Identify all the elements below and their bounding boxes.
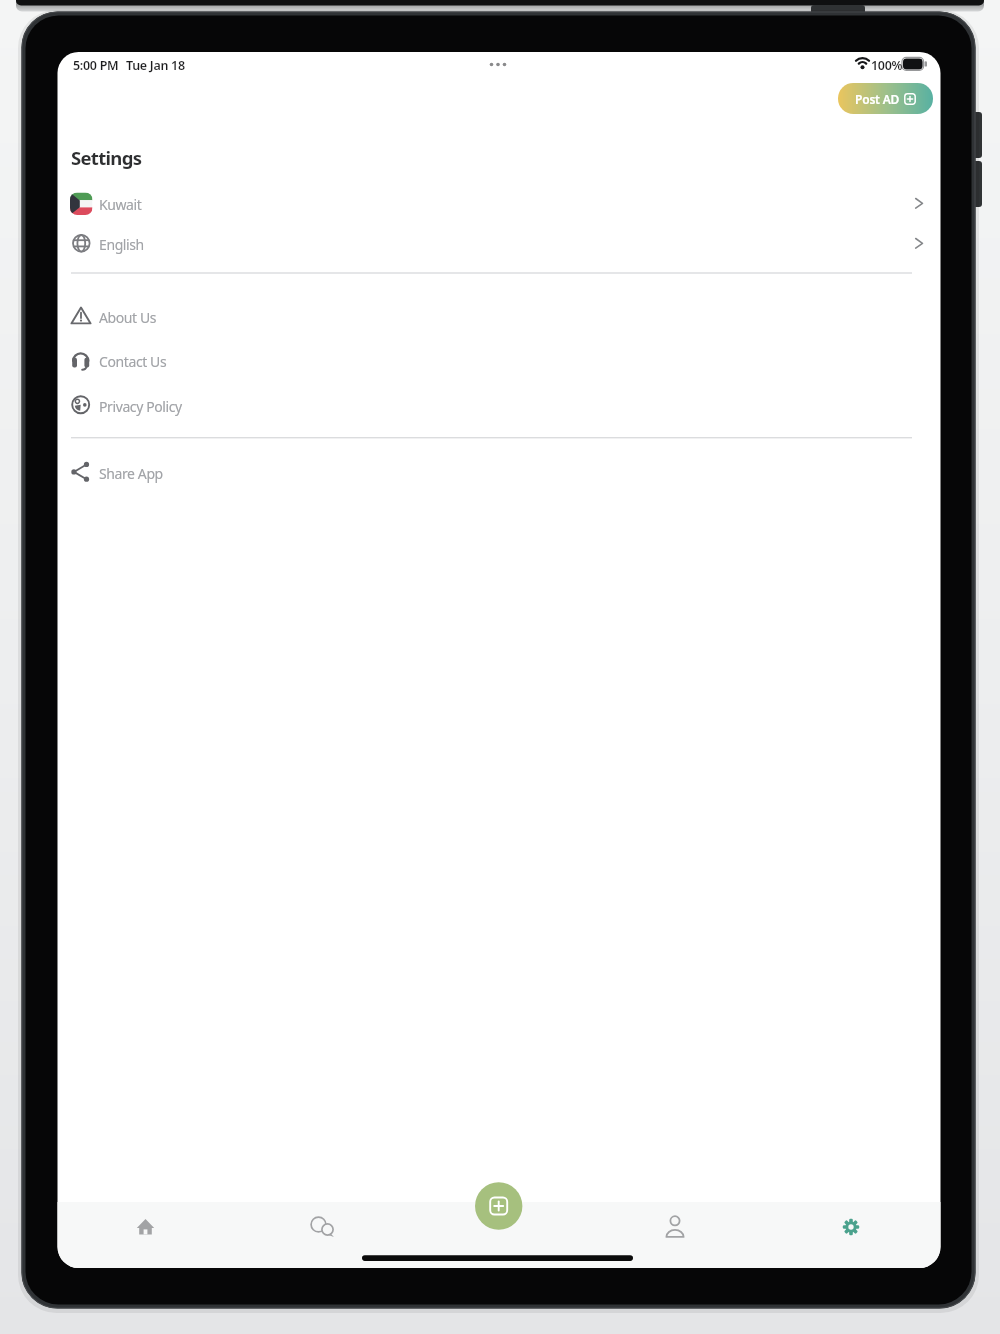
staticText: English [99, 235, 144, 254]
staticText: 100% [871, 57, 903, 74]
staticText: 5:00 PM [73, 57, 119, 74]
staticText: Privacy Policy [99, 397, 182, 416]
staticText: Kuwait [99, 195, 142, 214]
staticText: Share App [99, 464, 163, 483]
staticText: Settings [71, 145, 142, 170]
staticText: Contact Us [99, 352, 167, 371]
staticText: About Us [99, 308, 157, 327]
staticText: Post AD [855, 91, 900, 107]
staticText: Tue Jan 18 [126, 57, 185, 74]
